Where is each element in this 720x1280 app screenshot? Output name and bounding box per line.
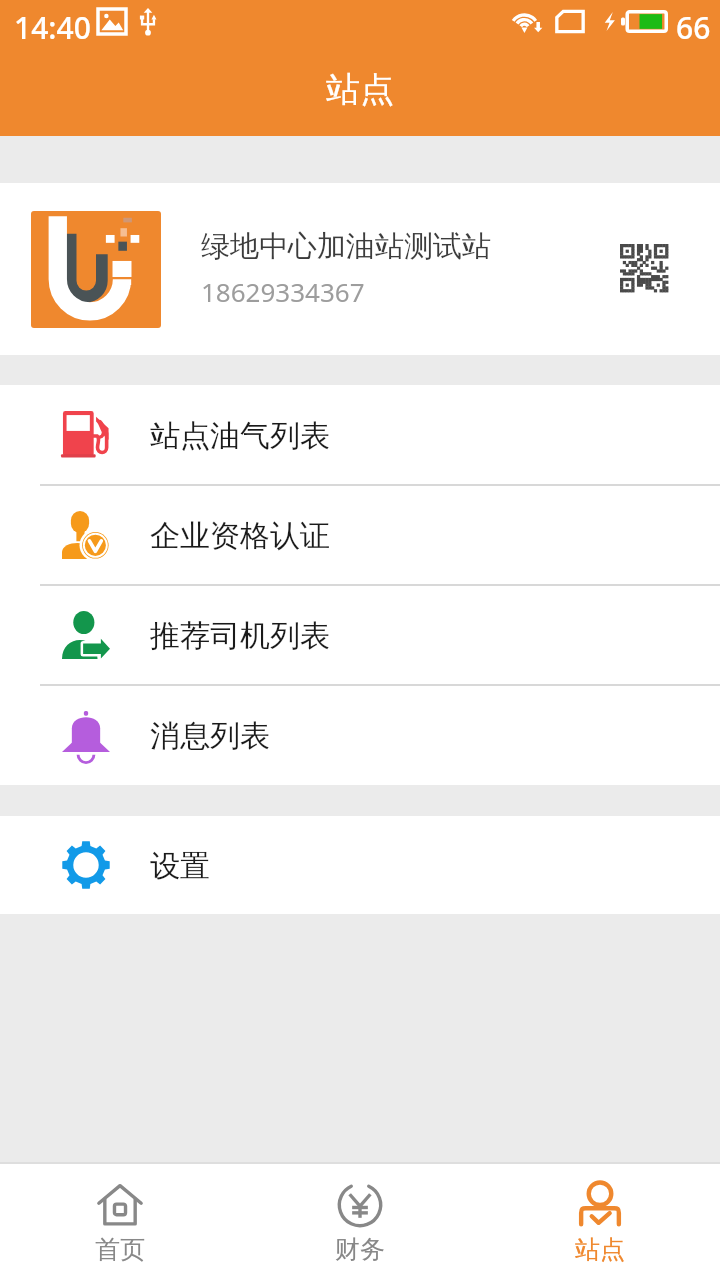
staticText: 站点 [575,1234,625,1265]
staticText: 设置 [150,847,210,885]
staticText: 18629334367 [201,274,365,309]
staticText: 财务 [335,1234,385,1265]
button[interactable]: QR code [596,220,692,316]
staticText: 消息列表 [150,717,270,755]
button[interactable]: 消息列表 [0,685,720,785]
button[interactable]: 站点 [480,1164,720,1280]
staticText: 站点油气列表 [150,417,330,455]
button[interactable]: 推荐司机列表 [0,585,720,685]
button[interactable]: 站点油气列表 [0,385,720,485]
button[interactable]: 财务 [240,1164,480,1280]
button[interactable]: 首页 [0,1164,240,1280]
staticText: 14:40 [14,7,91,48]
staticText: 推荐司机列表 [150,617,330,655]
staticText: 站点 [326,68,394,111]
staticText: 绿地中心加油站测试站 [201,228,491,265]
button[interactable]: 设置 [0,816,720,914]
staticText: 66 [676,7,711,48]
button[interactable]: 绿地中心加油站测试站 [0,183,720,355]
button[interactable]: 企业资格认证 [0,485,720,585]
staticText: 首页 [95,1234,145,1265]
staticText: 企业资格认证 [150,517,330,555]
